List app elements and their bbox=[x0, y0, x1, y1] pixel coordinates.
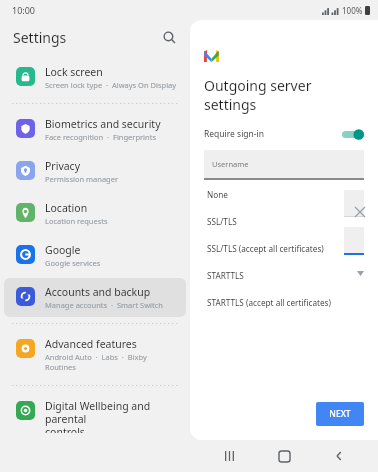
staticText: Google services bbox=[45, 258, 101, 268]
button[interactable]: Close bbox=[350, 202, 370, 222]
staticText: None bbox=[207, 189, 228, 200]
button[interactable]: Username bbox=[204, 150, 364, 178]
staticText: Biometrics and security bbox=[45, 117, 161, 131]
staticText: Digital Wellbeing and parental controls bbox=[45, 399, 178, 433]
button[interactable]: SSL/TLS (accept all certificates) bbox=[198, 235, 344, 262]
staticText: 10:00 bbox=[12, 4, 36, 16]
staticText: Manage accounts · Smart Switch bbox=[45, 300, 163, 310]
staticText: Face recognition · Fingerprints bbox=[45, 132, 156, 142]
button[interactable]: Recent apps bbox=[215, 441, 245, 471]
button[interactable]: Advanced features bbox=[4, 330, 186, 379]
staticText: STARTTLS bbox=[204, 267, 357, 279]
button[interactable] bbox=[204, 190, 364, 216]
button[interactable]: STARTTLS (accept all certificates) bbox=[198, 289, 344, 316]
button[interactable] bbox=[204, 227, 364, 253]
staticText: Username bbox=[212, 159, 249, 169]
staticText: STARTTLS bbox=[207, 270, 244, 281]
staticText: Accounts and backup bbox=[45, 285, 151, 299]
button[interactable]: Biometrics and security bbox=[4, 110, 186, 149]
staticText: Settings bbox=[13, 28, 67, 47]
staticText: Android Auto · Labs · Bixby Routines bbox=[45, 352, 178, 372]
staticText: 100% bbox=[342, 5, 363, 16]
staticText: Outgoing server settings bbox=[204, 76, 364, 114]
button[interactable]: Require sign-in bbox=[204, 128, 364, 140]
staticText: SSL/TLS (accept all certificates) bbox=[207, 243, 324, 254]
staticText: Location requests bbox=[45, 216, 108, 226]
staticText: Screen lock type · Always On Display bbox=[45, 80, 177, 90]
staticText: NEXT bbox=[329, 408, 351, 420]
button[interactable]: Google bbox=[4, 236, 186, 275]
staticText: Require sign-in bbox=[204, 128, 342, 140]
staticText: STARTTLS (accept all certificates) bbox=[207, 297, 331, 308]
button[interactable]: SSL/TLS bbox=[198, 208, 344, 235]
button[interactable]: NEXT bbox=[316, 402, 364, 426]
staticText: Privacy bbox=[45, 159, 81, 173]
button[interactable]: Accounts and backup bbox=[4, 278, 186, 317]
button[interactable]: Search bbox=[158, 26, 180, 48]
button[interactable]: STARTTLS bbox=[204, 265, 364, 281]
button[interactable]: Location bbox=[4, 194, 186, 233]
button[interactable]: Lock screen bbox=[4, 58, 186, 97]
staticText: SSL/TLS bbox=[207, 216, 237, 227]
staticText: Lock screen bbox=[45, 65, 103, 79]
button[interactable]: STARTTLS bbox=[198, 262, 344, 289]
staticText: Advanced features bbox=[45, 337, 137, 351]
staticText: Google bbox=[45, 243, 81, 257]
button[interactable]: Digital Wellbeing and parental controls bbox=[4, 392, 186, 440]
staticText: Location bbox=[45, 201, 88, 215]
button[interactable]: Home bbox=[269, 441, 299, 471]
button[interactable]: Back bbox=[324, 441, 354, 471]
button[interactable]: None bbox=[198, 181, 344, 208]
staticText: Permission manager bbox=[45, 174, 119, 184]
button[interactable]: Privacy bbox=[4, 152, 186, 191]
